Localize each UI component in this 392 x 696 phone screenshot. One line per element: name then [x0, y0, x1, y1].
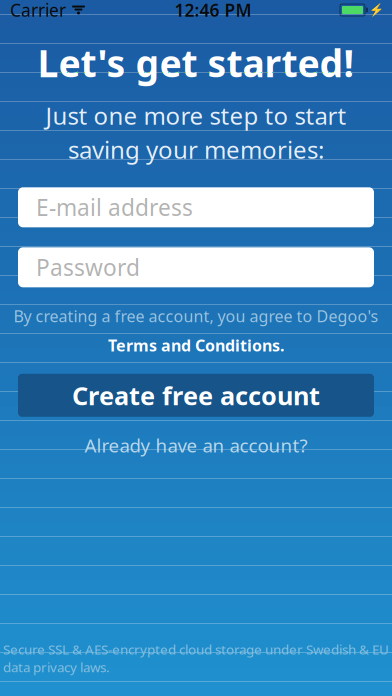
staticText: 12:46 PM: [174, 0, 251, 21]
staticText: Already have an account?: [84, 433, 307, 458]
staticText: saving your memories:: [68, 133, 324, 165]
staticText: Carrier: [10, 0, 66, 21]
button[interactable]: Already have an account?: [72, 427, 319, 464]
staticText: By creating a free account, you agree to…: [13, 305, 378, 326]
button[interactable]: Terms and Conditions.: [98, 331, 294, 360]
staticText: Password: [36, 252, 140, 282]
staticText: Terms and Conditions.: [108, 335, 284, 356]
staticText: Let's get started!: [37, 38, 354, 88]
staticText: Secure SSL & AES-encrypted cloud storage…: [3, 641, 389, 676]
staticText: ⚡: [369, 3, 384, 17]
staticText: E-mail address: [36, 192, 193, 222]
staticText: Create free account: [72, 378, 320, 412]
staticText: Just one more step to start: [45, 100, 346, 131]
button[interactable]: Create free account: [18, 374, 374, 417]
